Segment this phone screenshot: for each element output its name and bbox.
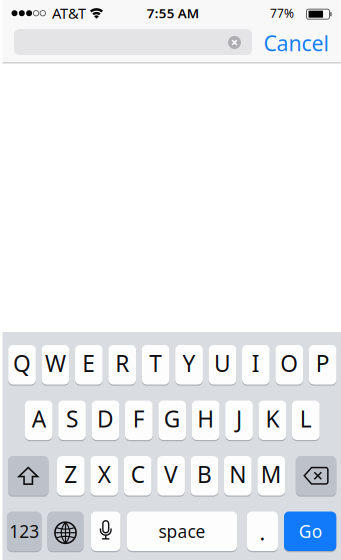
button[interactable]: Next keyboard — [47, 510, 83, 552]
button[interactable]: Cancel — [263, 29, 329, 57]
staticText: Go — [299, 520, 322, 543]
button[interactable]: J — [225, 399, 253, 441]
staticText: L — [300, 404, 312, 434]
button[interactable]: U — [209, 344, 236, 385]
button[interactable]: O — [275, 344, 303, 385]
staticText: I — [252, 348, 260, 378]
button[interactable]: W — [42, 344, 69, 385]
staticText: E — [82, 348, 95, 378]
staticText: H — [197, 404, 214, 434]
button[interactable]: B — [191, 455, 218, 496]
button[interactable]: Q — [8, 344, 36, 385]
staticText: Z — [64, 459, 77, 489]
button[interactable]: T — [142, 344, 169, 385]
staticText: C — [131, 459, 145, 489]
staticText: G — [164, 404, 181, 434]
button[interactable]: L — [292, 399, 320, 441]
staticText: V — [164, 459, 178, 489]
staticText: K — [265, 404, 279, 434]
staticText: W — [45, 348, 66, 378]
staticText: O — [280, 348, 298, 378]
staticText: B — [197, 459, 212, 489]
staticText: T — [149, 348, 162, 378]
staticText: F — [133, 404, 145, 434]
staticText: . — [259, 518, 265, 546]
staticText: N — [229, 459, 246, 489]
button[interactable]: M — [257, 455, 285, 496]
staticText: 77% — [270, 5, 294, 21]
button[interactable]: F — [125, 399, 153, 441]
button[interactable]: Delete — [296, 455, 336, 496]
button[interactable]: Go — [284, 510, 336, 552]
button[interactable]: Numbers — [7, 510, 41, 552]
button[interactable]: N — [224, 455, 252, 496]
staticText: 7:55 AM — [147, 4, 199, 22]
staticText: D — [97, 404, 114, 434]
button[interactable]: Dictate — [91, 510, 120, 552]
staticText: P — [316, 348, 330, 378]
button[interactable]: K — [259, 399, 286, 441]
button[interactable]: H — [192, 399, 219, 441]
button[interactable]: C — [124, 455, 151, 496]
staticText: A — [32, 404, 46, 434]
staticText: 123 — [9, 520, 39, 543]
button[interactable]: S — [58, 399, 86, 441]
staticText: M — [261, 459, 282, 489]
button[interactable]: X — [90, 455, 118, 496]
button[interactable]: Y — [175, 344, 203, 385]
staticText: AT&T — [52, 3, 86, 23]
staticText: X — [98, 459, 111, 489]
button[interactable]: A — [25, 399, 52, 441]
staticText: J — [236, 404, 242, 434]
button[interactable]: G — [158, 399, 186, 441]
staticText: U — [214, 348, 231, 378]
button[interactable]: period — [247, 510, 278, 552]
button[interactable]: Clear text — [227, 35, 241, 49]
staticText: space — [158, 520, 205, 543]
button[interactable]: V — [157, 455, 185, 496]
button[interactable]: Z — [57, 455, 85, 496]
staticText: S — [66, 404, 78, 434]
button[interactable]: Search or enter website name — [14, 29, 252, 55]
staticText: Q — [13, 348, 31, 378]
button[interactable]: E — [75, 344, 103, 385]
button[interactable]: I — [242, 344, 270, 385]
staticText: R — [115, 348, 129, 378]
staticText: Cancel — [263, 29, 329, 57]
staticText: Y — [183, 348, 196, 378]
button[interactable]: Shift — [8, 455, 48, 496]
button[interactable]: space — [127, 510, 237, 552]
button[interactable]: P — [309, 344, 336, 385]
button[interactable]: D — [92, 399, 119, 441]
button[interactable]: R — [108, 344, 136, 385]
